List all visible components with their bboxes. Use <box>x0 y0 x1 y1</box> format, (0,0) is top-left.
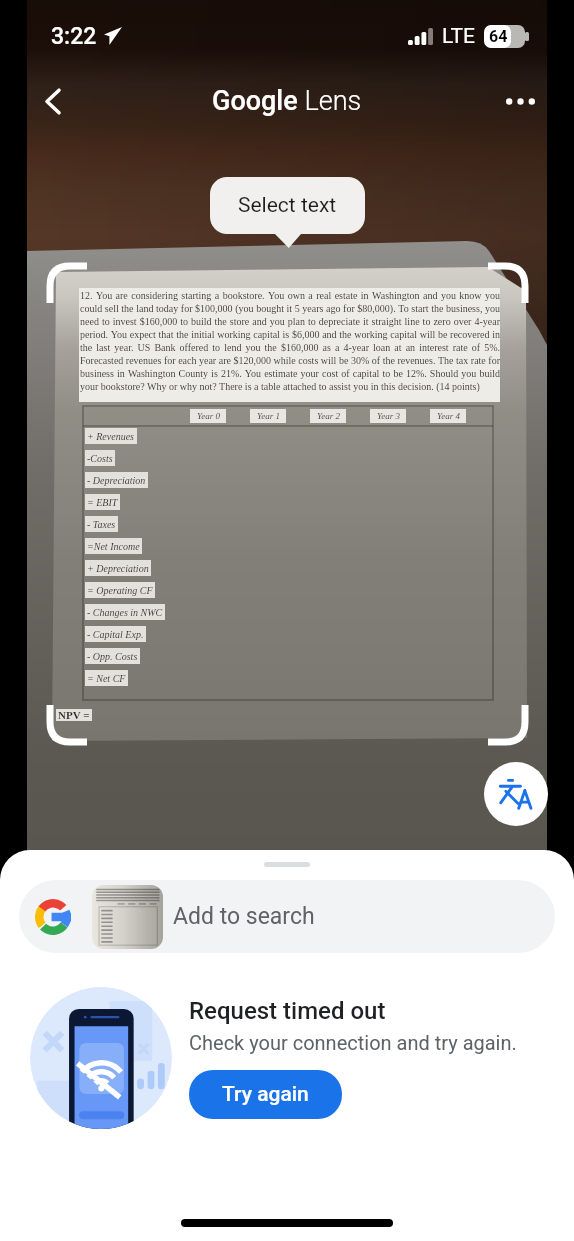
staticText: - Depreciation <box>87 475 146 486</box>
staticText: = EBIT <box>87 497 118 508</box>
staticText: =Net Income <box>87 541 140 552</box>
button[interactable]: More options <box>493 74 547 128</box>
staticText: 12. You are considering starting a books… <box>80 290 500 392</box>
button[interactable]: Select text <box>210 177 365 234</box>
staticText: Try again <box>222 1082 309 1107</box>
staticText: 3:22 <box>51 23 97 50</box>
button[interactable]: Back <box>27 74 81 128</box>
staticText: LTE <box>442 24 475 49</box>
staticText: - Taxes <box>87 519 116 530</box>
staticText: Add to search <box>173 903 315 930</box>
button[interactable]: Add to search <box>19 880 555 953</box>
staticText: - Changes in NWC <box>87 607 163 618</box>
staticText: 64 <box>489 27 508 46</box>
staticText: = Operating CF <box>87 585 153 596</box>
staticText: Lens <box>298 85 362 117</box>
staticText: - Capital Exp. <box>87 629 144 640</box>
staticText: Year 4 <box>437 411 460 421</box>
staticText: + Depreciation <box>87 563 149 574</box>
staticText: NPV = <box>58 709 90 721</box>
staticText: Request timed out <box>189 997 386 1025</box>
button[interactable]: Try again <box>189 1070 342 1119</box>
staticText: Year 1 <box>257 411 280 421</box>
staticText: - Opp. Costs <box>87 651 138 662</box>
staticText: + Revenues <box>87 431 135 442</box>
staticText: Google <box>212 85 298 117</box>
staticText: Year 2 <box>317 411 340 421</box>
staticText: Year 3 <box>377 411 400 421</box>
staticText: Year 0 <box>197 411 220 421</box>
staticText: = Net CF <box>87 673 126 684</box>
staticText: Select text <box>238 193 337 218</box>
button[interactable]: Translate <box>484 762 548 826</box>
staticText: Check your connection and try again. <box>189 1031 517 1054</box>
staticText: -Costs <box>87 453 113 464</box>
